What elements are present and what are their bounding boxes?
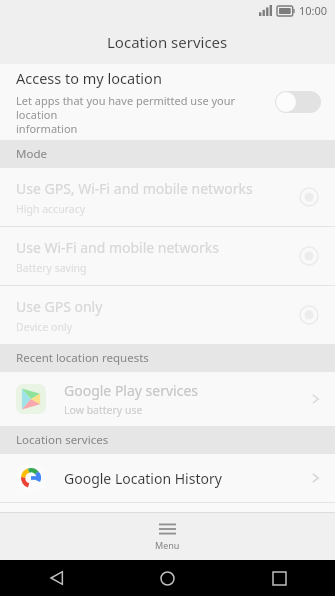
button[interactable]: Use GPS only xyxy=(0,286,335,344)
other: Select mode xyxy=(299,246,319,266)
staticText: Google Location History xyxy=(64,469,311,488)
staticText: Location services xyxy=(16,432,109,448)
button[interactable]: Google Play services xyxy=(0,372,335,426)
staticText: 10:00 xyxy=(299,3,328,18)
staticText: Device only xyxy=(16,320,73,334)
staticText: Google Play services xyxy=(64,381,199,400)
button[interactable]: Access to my location toggle xyxy=(275,91,321,113)
staticText: Use GPS, Wi-Fi and mobile networks xyxy=(16,179,253,198)
button[interactable]: Access to my location xyxy=(0,64,335,140)
button[interactable]: Use Wi-Fi and mobile networks xyxy=(0,227,335,285)
staticText: Low battery use xyxy=(64,403,143,417)
other: Select mode xyxy=(299,305,319,325)
button[interactable]: Recent apps xyxy=(264,563,294,593)
staticText: Use GPS only xyxy=(16,297,103,316)
staticText: Let apps that you have permitted use you… xyxy=(16,93,265,136)
staticText: Mode xyxy=(16,146,47,162)
button[interactable]: Back xyxy=(41,563,71,593)
staticText: Access to my location xyxy=(16,68,162,88)
staticText: Use Wi-Fi and mobile networks xyxy=(16,238,219,257)
button[interactable]: Use GPS, Wi-Fi and mobile networks xyxy=(0,168,335,226)
button[interactable]: Home xyxy=(152,563,182,593)
button[interactable]: Menu xyxy=(0,513,335,560)
button[interactable]: Google Location History xyxy=(0,454,335,502)
staticText: Battery saving xyxy=(16,261,87,275)
staticText: High accuracy xyxy=(16,202,86,216)
staticText: Location services xyxy=(107,32,228,52)
other: Select mode xyxy=(299,187,319,207)
staticText: Recent location requests xyxy=(16,350,149,366)
staticText: Menu xyxy=(155,539,180,551)
